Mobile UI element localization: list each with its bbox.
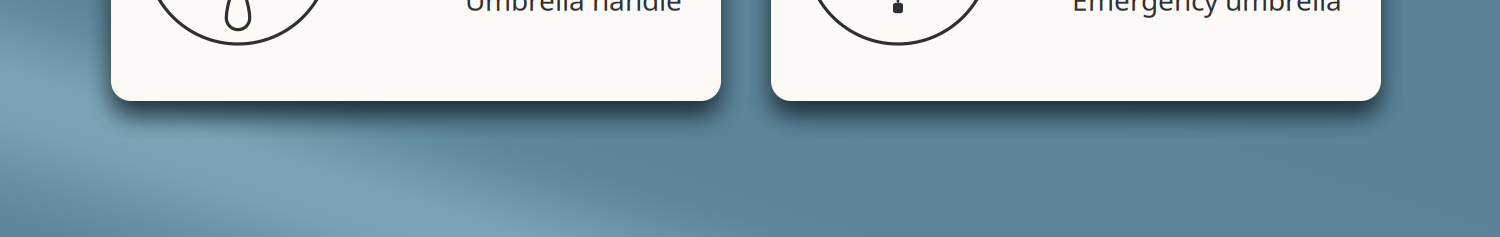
staticText: Umbrella handle — [465, 0, 682, 19]
staticText: Emergency umbrella — [1072, 0, 1342, 19]
button[interactable]: Emergency umbrella — [0, 0, 610, 237]
button[interactable]: Umbrella handle — [0, 0, 610, 237]
